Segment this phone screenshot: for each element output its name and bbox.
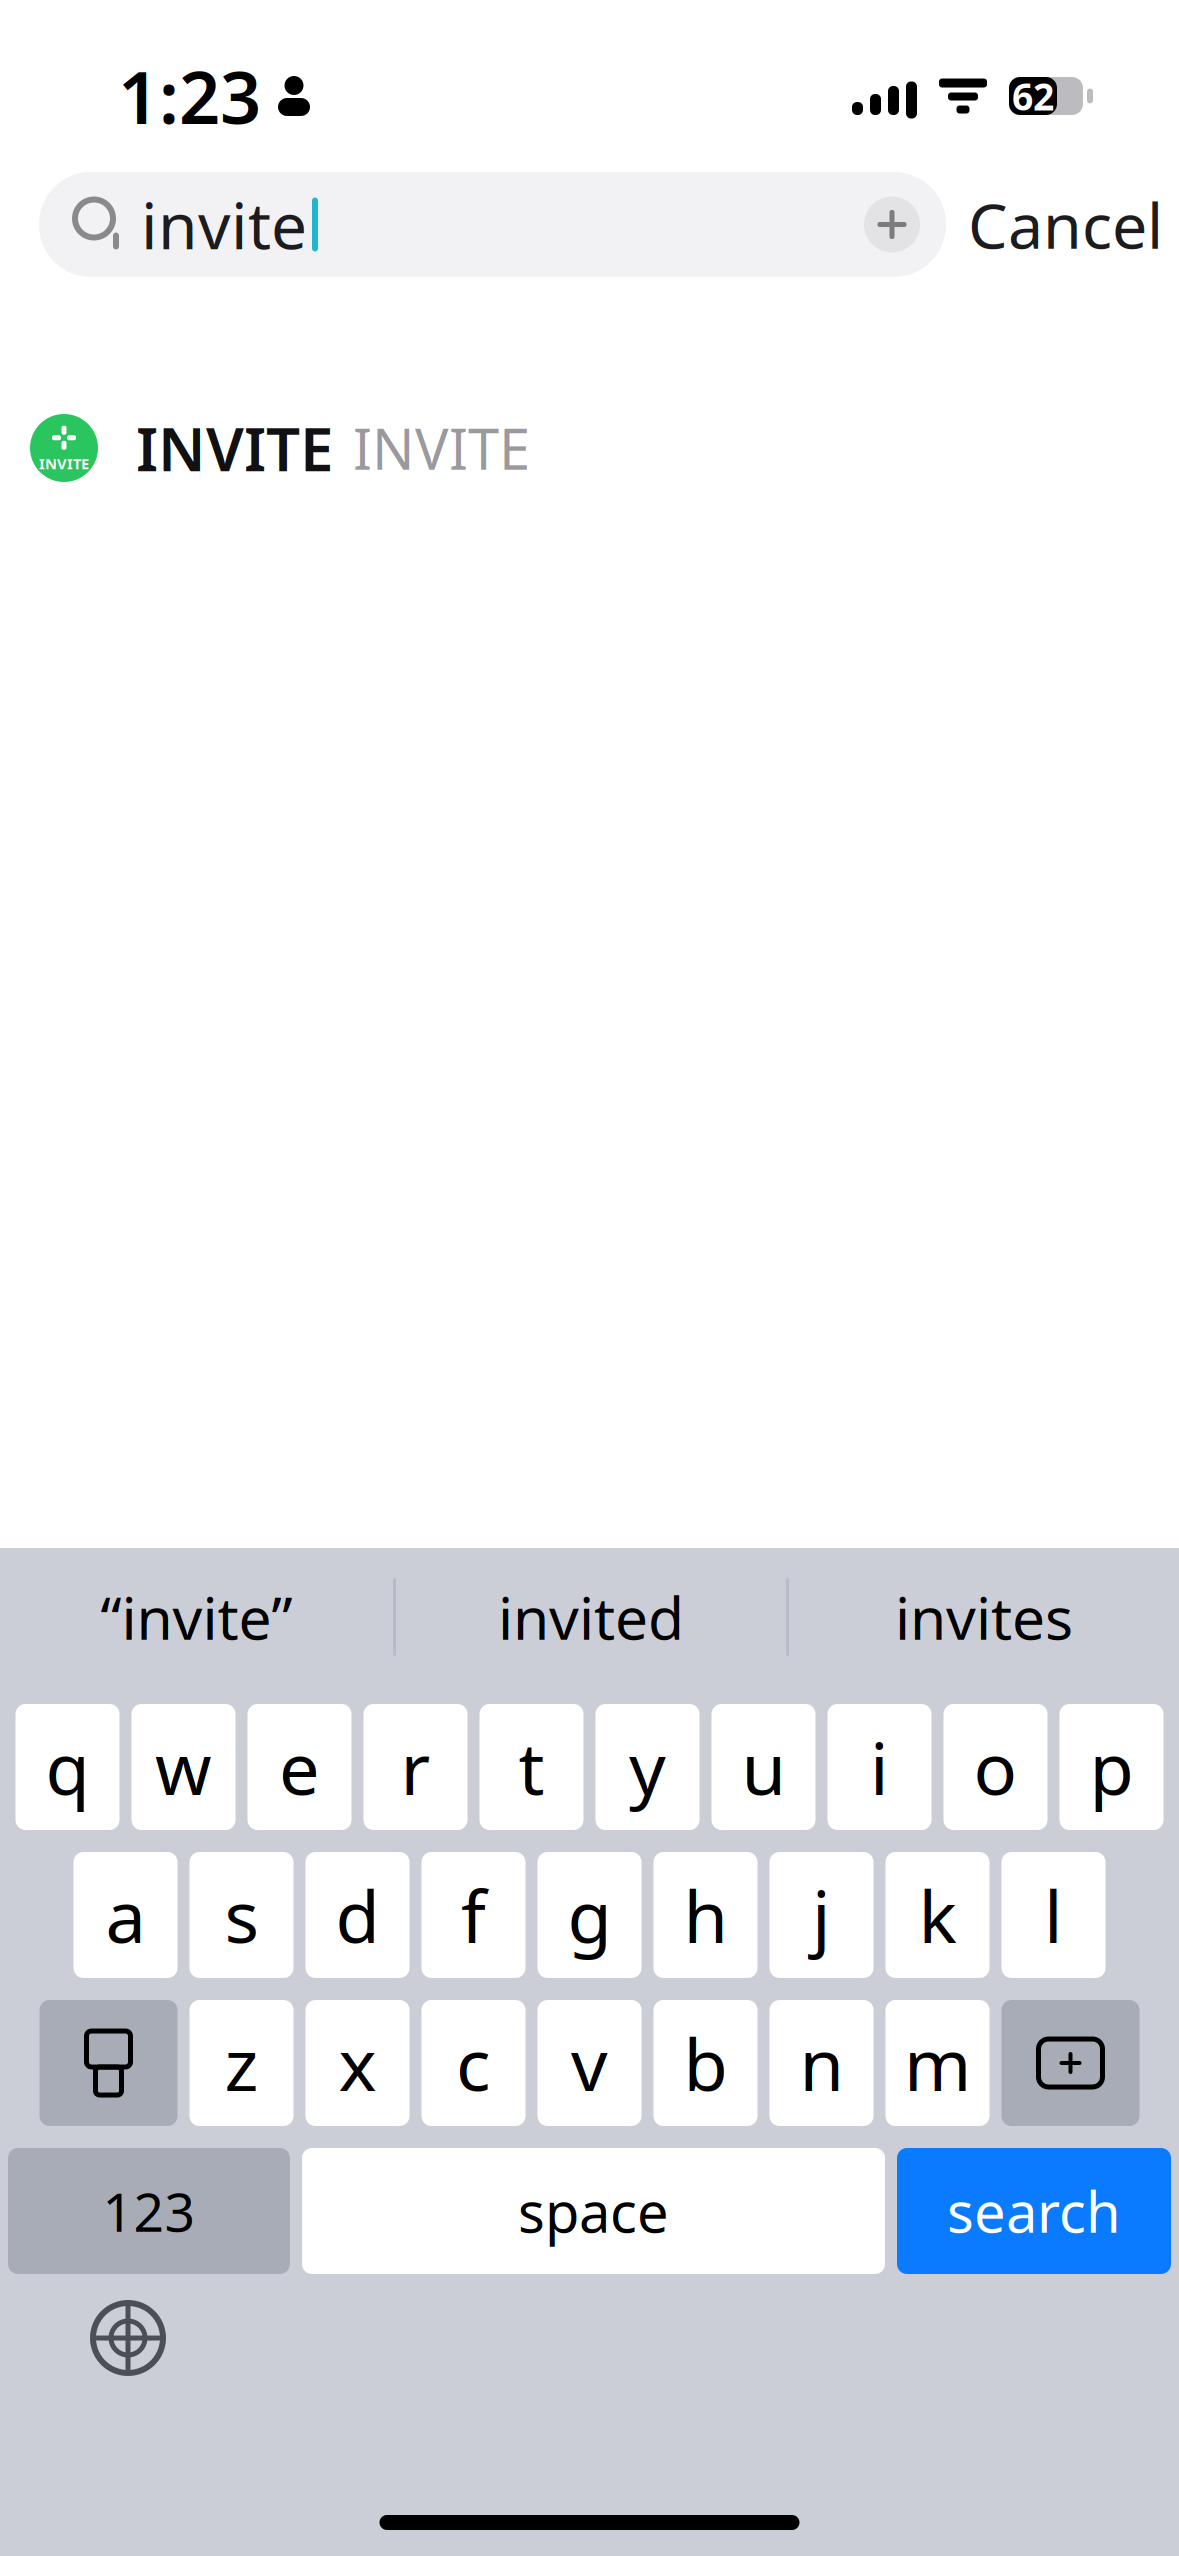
- button[interactable]: 123: [8, 2148, 290, 2274]
- staticText: INVITE: [39, 454, 89, 473]
- staticText: space: [518, 2174, 669, 2248]
- button[interactable]: a: [73, 1852, 177, 1978]
- button[interactable]: v: [537, 2000, 641, 2126]
- button[interactable]: c: [421, 2000, 525, 2126]
- staticText: e: [279, 1719, 320, 1815]
- staticText: d: [335, 1867, 379, 1963]
- staticText: q: [45, 1719, 89, 1815]
- staticText: invite: [141, 182, 307, 267]
- staticText: w: [155, 1719, 212, 1815]
- button[interactable]: f: [421, 1852, 525, 1978]
- staticText: z: [224, 2015, 258, 2111]
- staticText: b: [683, 2015, 727, 2111]
- staticText: invited: [498, 1578, 684, 1656]
- staticText: 62: [1012, 71, 1054, 121]
- button[interactable]: invites: [789, 1548, 1179, 1686]
- staticText: 1:23: [118, 48, 261, 144]
- staticText: k: [918, 1867, 956, 1963]
- staticText: u: [741, 1719, 785, 1815]
- button[interactable]: u: [711, 1704, 815, 1830]
- staticText: “invite”: [100, 1578, 292, 1656]
- button[interactable]: w: [131, 1704, 235, 1830]
- button[interactable]: r: [363, 1704, 467, 1830]
- staticText: t: [518, 1719, 544, 1815]
- button[interactable]: search: [897, 2148, 1171, 2274]
- button[interactable]: Shift: [39, 2000, 177, 2126]
- button[interactable]: t: [479, 1704, 583, 1830]
- staticText: x: [338, 2015, 376, 2111]
- staticText: h: [683, 1867, 727, 1963]
- staticText: INVITE: [353, 411, 530, 485]
- button[interactable]: Cancel: [946, 172, 1179, 277]
- button[interactable]: Delete: [1001, 2000, 1139, 2126]
- staticText: c: [456, 2015, 491, 2111]
- button[interactable]: k: [885, 1852, 989, 1978]
- staticText: l: [1044, 1867, 1063, 1963]
- staticText: r: [400, 1719, 430, 1815]
- button[interactable]: h: [653, 1852, 757, 1978]
- button[interactable]: y: [595, 1704, 699, 1830]
- button[interactable]: d: [305, 1852, 409, 1978]
- button[interactable]: invite: [39, 172, 946, 277]
- staticText: v: [571, 2015, 608, 2111]
- button[interactable]: n: [769, 2000, 873, 2126]
- staticText: a: [105, 1867, 145, 1963]
- staticText: n: [799, 2015, 843, 2111]
- staticText: f: [461, 1867, 486, 1963]
- button[interactable]: Switch keyboard: [72, 2288, 184, 2388]
- staticText: o: [973, 1719, 1017, 1815]
- staticText: INVITE: [136, 408, 333, 488]
- button[interactable]: x: [305, 2000, 409, 2126]
- staticText: y: [629, 1719, 666, 1815]
- button[interactable]: z: [189, 2000, 293, 2126]
- button[interactable]: i: [827, 1704, 931, 1830]
- button[interactable]: m: [885, 2000, 989, 2126]
- staticText: j: [812, 1867, 831, 1963]
- button[interactable]: space: [302, 2148, 885, 2274]
- button[interactable]: invited: [396, 1548, 786, 1686]
- button[interactable]: g: [537, 1852, 641, 1978]
- button[interactable]: q: [15, 1704, 119, 1830]
- button[interactable]: p: [1059, 1704, 1163, 1830]
- button[interactable]: j: [769, 1852, 873, 1978]
- staticText: g: [567, 1867, 611, 1963]
- button[interactable]: o: [943, 1704, 1047, 1830]
- staticText: Cancel: [968, 183, 1163, 266]
- staticText: 123: [102, 2176, 195, 2246]
- staticText: search: [947, 2174, 1121, 2248]
- staticText: invites: [895, 1578, 1073, 1656]
- staticText: m: [904, 2015, 971, 2111]
- button[interactable]: s: [189, 1852, 293, 1978]
- button[interactable]: e: [247, 1704, 351, 1830]
- staticText: p: [1089, 1719, 1133, 1815]
- staticText: i: [870, 1719, 889, 1815]
- staticText: s: [224, 1867, 258, 1963]
- button[interactable]: INVITE: [0, 389, 1179, 507]
- button[interactable]: “invite”: [0, 1548, 393, 1686]
- button[interactable]: b: [653, 2000, 757, 2126]
- button[interactable]: l: [1001, 1852, 1105, 1978]
